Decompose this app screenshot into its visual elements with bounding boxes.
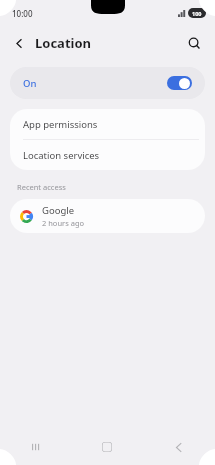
button[interactable]: Back [143,429,215,465]
staticText: On [23,77,37,90]
button[interactable]: App permissions [10,109,205,139]
staticText: Recent access [17,182,66,192]
button[interactable]: Back [8,32,30,54]
staticText: App permissions [23,118,98,131]
button[interactable]: Home [71,429,143,465]
button[interactable]: Search [182,31,206,55]
button[interactable]: Location services [10,140,205,170]
staticText: Google [42,204,75,217]
staticText: 2 hours ago [42,218,85,228]
staticText: Location services [23,149,100,162]
button[interactable]: Recents [0,429,71,465]
staticText: Location [35,34,91,52]
staticText: 10:00 [12,8,33,19]
button[interactable]: On [10,67,205,99]
staticText: 100 [192,10,202,17]
button[interactable]: Google [10,199,205,233]
